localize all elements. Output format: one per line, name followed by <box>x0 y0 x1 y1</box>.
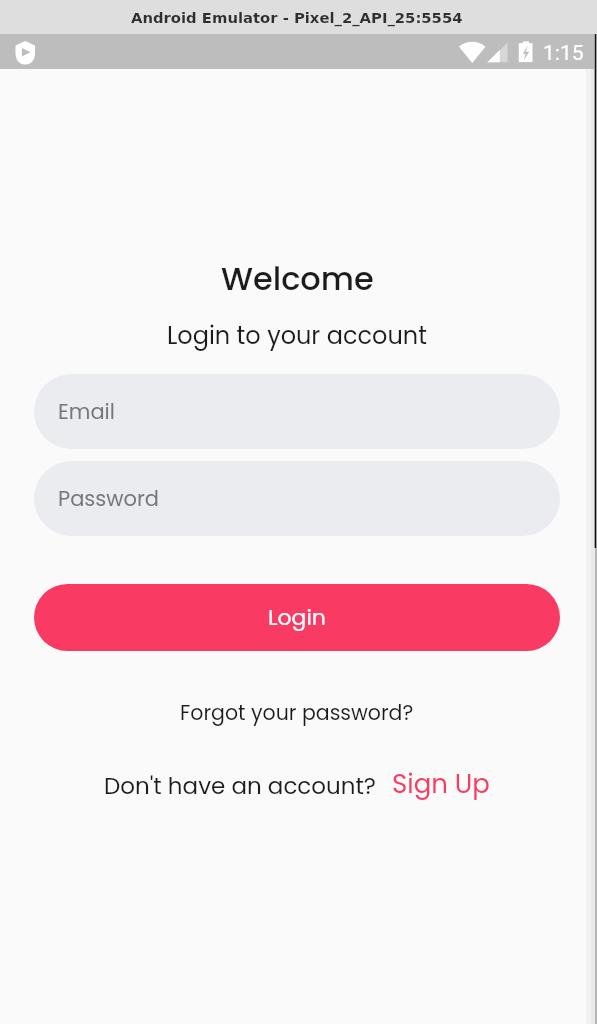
staticText: Sign Up <box>392 766 490 802</box>
staticText: Password <box>58 484 159 513</box>
staticText: Login to your account <box>167 319 427 353</box>
staticText: Login <box>268 602 326 633</box>
button[interactable]: Login <box>34 584 560 651</box>
staticText: Welcome <box>221 256 374 301</box>
staticText: Don't have an account? <box>104 770 376 802</box>
staticText: Email <box>58 397 115 426</box>
button[interactable]: Email <box>34 374 560 449</box>
button[interactable]: Password <box>34 461 560 536</box>
button[interactable]: Sign Up <box>392 766 490 802</box>
button[interactable]: Forgot your password? <box>170 693 424 732</box>
staticText: Forgot your password? <box>180 698 414 727</box>
staticText: 1:15 <box>543 41 584 66</box>
staticText: Android Emulator - Pixel_2_API_25:5554 <box>131 9 463 26</box>
